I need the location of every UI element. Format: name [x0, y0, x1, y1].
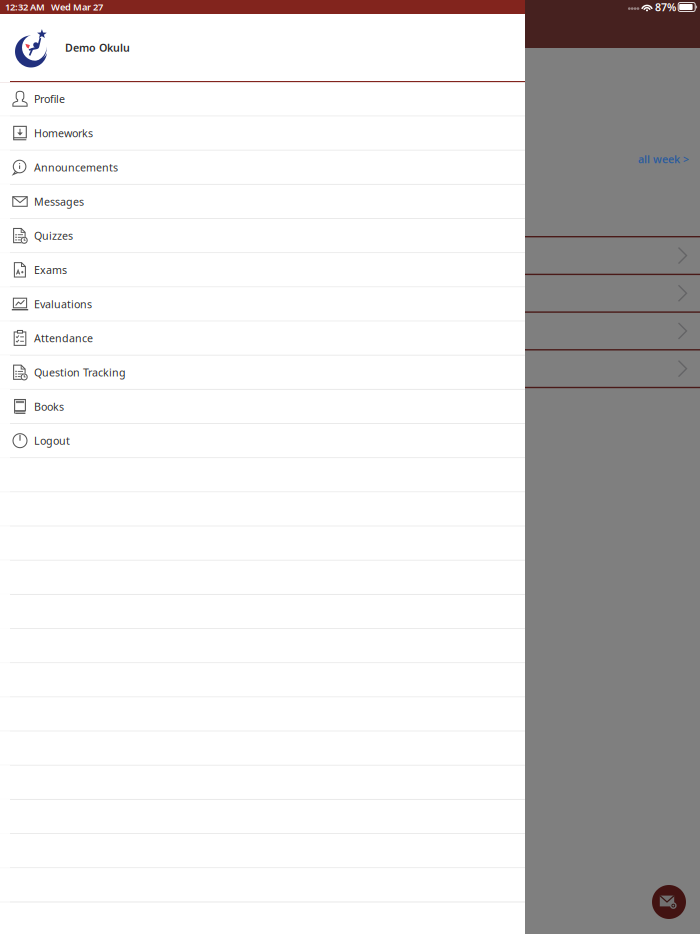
staticText: Attendance: [34, 331, 93, 345]
button[interactable]: Quizzes: [0, 219, 525, 253]
staticText: Homeworks: [34, 126, 93, 140]
staticText: Messages: [34, 194, 84, 209]
staticText: Logout: [34, 434, 70, 448]
staticText: Announcements: [34, 160, 118, 174]
staticText: Exams: [34, 263, 67, 277]
staticText: Profile: [34, 92, 65, 106]
staticText: Demo Okulu: [65, 40, 130, 55]
button[interactable]: Exams: [0, 253, 525, 287]
button[interactable]: Question Tracking: [0, 356, 525, 390]
staticText: Quizzes: [34, 229, 73, 243]
button[interactable]: Attendance: [0, 322, 525, 356]
button[interactable]: Evaluations: [0, 287, 525, 322]
button[interactable]: Homeworks: [0, 117, 525, 151]
button[interactable]: Compose message: [652, 885, 686, 919]
staticText: Wed Mar 27: [51, 1, 103, 13]
button[interactable]: Profile: [0, 82, 525, 117]
staticText: 87%: [655, 0, 676, 14]
button[interactable]: all week >: [638, 150, 700, 168]
staticText: 12:32 AM: [5, 1, 45, 13]
staticText: Evaluations: [34, 297, 92, 311]
button[interactable]: Messages: [0, 185, 525, 219]
button[interactable]: Logout: [0, 424, 525, 458]
staticText: Question Tracking: [34, 365, 126, 379]
button[interactable]: Books: [0, 390, 525, 424]
staticText: all week >: [638, 152, 689, 166]
button[interactable]: Announcements: [0, 151, 525, 185]
staticText: Books: [34, 399, 64, 414]
